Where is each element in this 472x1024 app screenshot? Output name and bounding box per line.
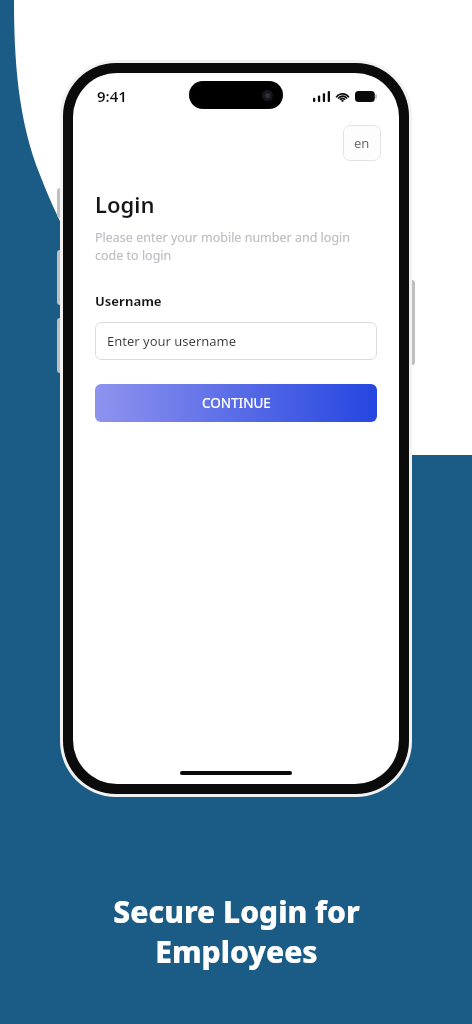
staticText: Secure Login for Employees [113,891,360,972]
staticText: 9:41 [97,86,127,106]
button[interactable]: Enter your username [95,322,377,360]
staticText: en [354,134,370,152]
staticText: CONTINUE [202,394,271,412]
staticText: Please enter your mobile number and logi… [95,229,377,264]
button[interactable]: Change language, English [343,125,381,161]
staticText: Login [95,189,155,219]
staticText: Username [95,292,162,310]
staticText: Enter your username [107,332,237,350]
button[interactable]: CONTINUE [95,384,377,422]
